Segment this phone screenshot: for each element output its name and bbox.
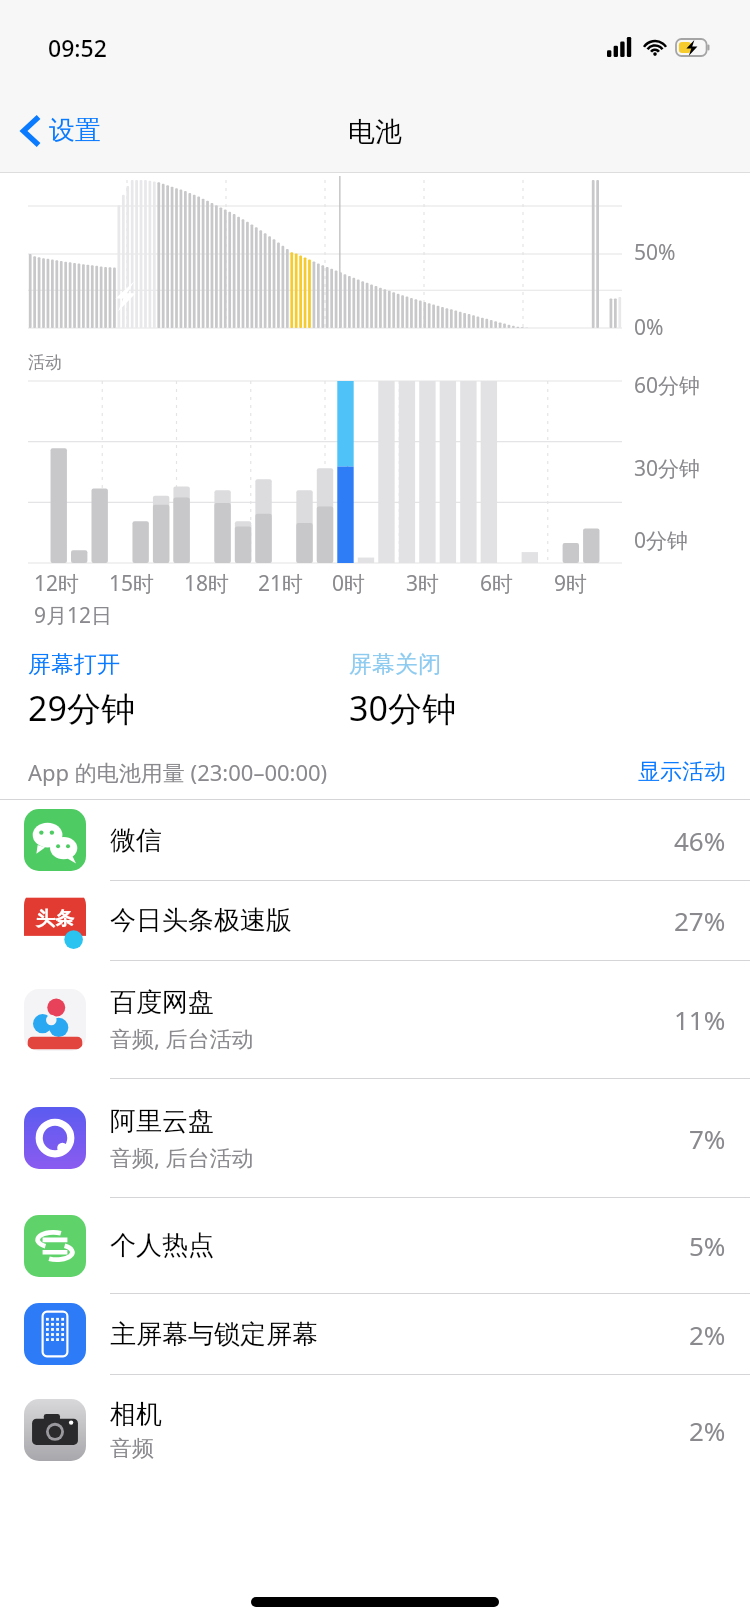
staticText: 09:52	[48, 32, 107, 63]
staticText: 30分钟	[634, 454, 701, 483]
staticText: 2%	[689, 1317, 726, 1352]
staticText: App 的电池用量 (23:00–00:00)	[28, 757, 328, 787]
staticText: 阿里云盘	[110, 1105, 214, 1138]
staticText: 0分钟	[634, 526, 689, 555]
staticText: 设置	[49, 114, 101, 147]
staticText: 30分钟	[349, 685, 456, 731]
button[interactable]: 头条	[0, 881, 750, 960]
staticText: 0%	[634, 313, 664, 338]
staticText: 6时	[480, 569, 514, 598]
button[interactable]: 设置	[14, 108, 109, 153]
staticText: 显示活动	[638, 758, 726, 786]
staticText: 百度网盘	[110, 986, 214, 1019]
staticText: 屏幕关闭	[349, 650, 441, 679]
button[interactable]: 个人热点	[0, 1198, 750, 1293]
button[interactable]: 相机	[0, 1375, 750, 1485]
staticText: 0时	[332, 569, 366, 598]
staticText: 29分钟	[28, 685, 135, 731]
button[interactable]: 微信	[0, 800, 750, 880]
staticText: 音频	[110, 1435, 154, 1463]
staticText: 头条	[36, 907, 74, 931]
staticText: 微信	[110, 824, 162, 857]
staticText: 相机	[110, 1398, 162, 1431]
staticText: 50%	[634, 238, 676, 267]
staticText: 屏幕打开	[28, 650, 120, 679]
staticText: 21时	[258, 569, 304, 598]
button[interactable]: 百度网盘	[0, 961, 750, 1078]
staticText: 活动	[28, 352, 62, 373]
staticText: 27%	[674, 903, 726, 938]
staticText: 60分钟	[634, 371, 701, 400]
staticText: 5%	[689, 1228, 726, 1263]
staticText: 今日头条极速版	[110, 904, 292, 937]
button[interactable]: 显示活动	[638, 758, 726, 786]
staticText: 9时	[554, 569, 588, 598]
button[interactable]: 阿里云盘	[0, 1079, 750, 1197]
staticText: 7%	[689, 1121, 726, 1156]
staticText: 音频, 后台活动	[110, 1142, 254, 1172]
staticText: 个人热点	[110, 1229, 214, 1262]
staticText: 15时	[109, 569, 155, 598]
staticText: 9月12日	[34, 601, 113, 630]
staticText: 电池	[348, 115, 402, 149]
staticText: 18时	[184, 569, 230, 598]
staticText: 主屏幕与锁定屏幕	[110, 1318, 318, 1351]
staticText: 音频, 后台活动	[110, 1023, 254, 1053]
staticText: 3时	[406, 569, 440, 598]
staticText: 11%	[674, 1002, 726, 1037]
staticText: 46%	[674, 823, 726, 858]
staticText: 12时	[34, 569, 80, 598]
button[interactable]: 主屏幕与锁定屏幕	[0, 1294, 750, 1374]
staticText: 2%	[689, 1413, 726, 1448]
